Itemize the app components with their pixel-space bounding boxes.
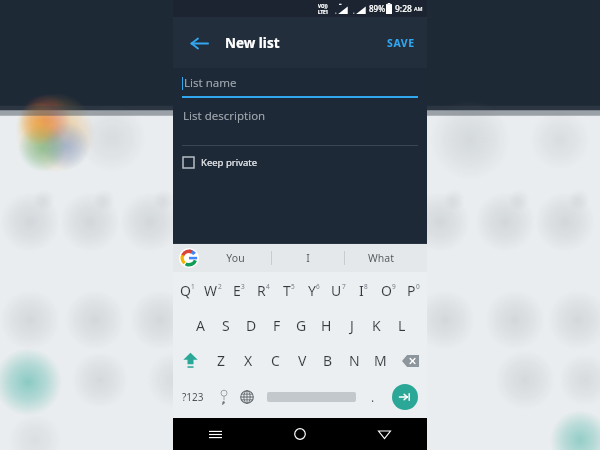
button[interactable]: W — [200, 272, 226, 308]
button[interactable]: L — [389, 308, 414, 343]
button[interactable]: Keep private — [173, 146, 427, 178]
staticText: I — [306, 251, 310, 265]
staticText: P — [407, 281, 416, 300]
button[interactable]: Emoji — [213, 378, 235, 416]
staticText: X — [244, 351, 253, 370]
button[interactable]: U — [326, 272, 351, 308]
staticText: K — [372, 316, 381, 335]
button[interactable]: Back — [181, 25, 217, 61]
button[interactable]: SAVE — [375, 26, 427, 60]
button[interactable]: What — [345, 244, 417, 272]
staticText: A — [196, 316, 205, 335]
staticText: List description — [183, 108, 266, 124]
button[interactable]: F — [264, 308, 289, 343]
button[interactable]: Space — [259, 378, 363, 416]
staticText: 4 — [266, 282, 270, 291]
staticText: ?123 — [182, 390, 204, 404]
staticText: Keep private — [201, 156, 258, 169]
staticText: List name — [184, 75, 237, 91]
button[interactable]: Q — [174, 272, 200, 308]
button[interactable]: Z — [208, 343, 235, 378]
staticText: New list — [225, 34, 280, 52]
staticText: Y — [308, 281, 316, 300]
staticText: 8 — [364, 282, 368, 291]
staticText: L — [398, 316, 406, 335]
button[interactable]: Back — [342, 418, 427, 450]
button[interactable]: X — [235, 343, 262, 378]
button[interactable]: List name — [173, 68, 427, 98]
staticText: 5 — [291, 282, 295, 291]
button[interactable]: B — [315, 343, 341, 378]
staticText: O — [381, 281, 392, 300]
staticText: V — [298, 351, 307, 370]
button[interactable]: S — [213, 308, 239, 343]
button[interactable]: K — [364, 308, 389, 343]
staticText: 1 — [191, 282, 195, 291]
button[interactable]: V — [289, 343, 315, 378]
button[interactable]: N — [341, 343, 367, 378]
button[interactable]: Recent apps — [173, 418, 257, 450]
button[interactable]: C — [262, 343, 289, 378]
button[interactable]: H — [314, 308, 339, 343]
button[interactable]: J — [339, 308, 364, 343]
staticText: You — [226, 251, 245, 265]
staticText: S — [222, 316, 230, 335]
staticText: 3 — [241, 282, 245, 291]
button[interactable]: T — [276, 272, 301, 308]
staticText: VO)) — [318, 3, 328, 9]
staticText: E — [233, 281, 241, 300]
button[interactable]: . — [363, 378, 383, 416]
staticText: C — [271, 351, 280, 370]
staticText: What — [368, 251, 394, 265]
button[interactable]: Home — [257, 418, 342, 450]
staticText: G — [296, 316, 307, 335]
button[interactable]: E — [226, 272, 251, 308]
button[interactable]: You — [199, 244, 271, 272]
staticText: H — [321, 316, 332, 335]
staticText: D — [246, 316, 257, 335]
button[interactable]: Shift — [173, 343, 208, 378]
staticText: M — [374, 351, 387, 370]
staticText: F — [273, 316, 281, 335]
staticText: 9 — [392, 282, 396, 291]
button[interactable]: Google — [179, 248, 199, 268]
button[interactable]: O — [376, 272, 401, 308]
staticText: Z — [217, 351, 226, 370]
staticText: 7 — [342, 282, 346, 291]
staticText: W — [204, 281, 218, 300]
staticText: T — [283, 281, 291, 300]
button[interactable]: Y — [301, 272, 326, 308]
button[interactable]: Enter — [383, 378, 427, 416]
button[interactable]: M — [367, 343, 393, 378]
button[interactable]: D — [239, 308, 264, 343]
button[interactable]: G — [289, 308, 314, 343]
staticText: 89% — [369, 3, 385, 14]
staticText: J — [350, 316, 354, 335]
button[interactable]: Backspace — [393, 343, 427, 378]
button[interactable]: P — [401, 272, 426, 308]
staticText: U — [331, 281, 342, 300]
staticText: 2 — [218, 282, 222, 291]
staticText: AM — [414, 5, 423, 12]
button[interactable]: A — [187, 308, 213, 343]
button[interactable]: List description — [173, 98, 427, 146]
staticText: N — [349, 351, 360, 370]
staticText: . — [371, 389, 375, 405]
staticText: 9:28 — [395, 3, 412, 15]
button[interactable]: Change language — [235, 378, 259, 416]
staticText: SAVE — [387, 36, 415, 50]
button[interactable]: ?123 — [173, 378, 213, 416]
staticText: I — [359, 281, 364, 300]
staticText: 0 — [416, 282, 420, 291]
staticText: B — [323, 351, 333, 370]
button[interactable]: I — [272, 244, 344, 272]
button[interactable]: I — [351, 272, 376, 308]
staticText: 6 — [316, 282, 320, 291]
staticText: LTE1 — [318, 9, 329, 15]
button[interactable]: R — [251, 272, 276, 308]
staticText: R — [257, 281, 266, 300]
staticText: Q — [180, 281, 191, 300]
